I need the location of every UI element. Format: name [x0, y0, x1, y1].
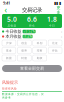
staticText: 沪深	[6, 41, 12, 45]
staticText: 科创	[37, 41, 43, 45]
staticText: 5.0	[7, 15, 17, 24]
button[interactable]: 更多	[55, 6, 62, 13]
staticText: -1.2%	[24, 35, 32, 38]
staticText: 本月收益	[5, 34, 21, 39]
staticText: 转债	[21, 56, 27, 60]
button[interactable]: 期权	[33, 55, 47, 61]
staticText: 1.8	[47, 15, 57, 24]
staticText: 持仓	[29, 24, 35, 27]
staticText: 存款	[52, 49, 58, 52]
staticText: +0.52%	[24, 30, 35, 33]
button[interactable]: 沪深	[2, 40, 16, 46]
staticText: ‹	[4, 5, 6, 15]
staticText: 基金	[6, 49, 12, 52]
staticText: ▮▮ ▮	[54, 1, 61, 5]
staticText: 更多	[56, 5, 60, 15]
staticText: 6.6	[27, 15, 37, 24]
staticText: ›	[61, 34, 62, 39]
button[interactable]: 北证	[48, 40, 62, 46]
staticText: 数据来源：交易所公开信息，仅供参考	[2, 93, 44, 99]
button[interactable]: 本月收益	[0, 34, 64, 39]
staticText: 查看全部交易	[20, 66, 44, 71]
button[interactable]: 查看全部交易	[2, 65, 62, 72]
button[interactable]: 科创	[33, 40, 47, 46]
staticText: 今日收益	[5, 29, 21, 34]
staticText: 理财	[37, 49, 43, 52]
staticText: 交易记录	[22, 7, 42, 13]
button[interactable]: 债券	[17, 47, 31, 53]
staticText: 9:41	[3, 0, 10, 6]
staticText: 风险提示	[2, 80, 18, 85]
button[interactable]: 存款	[48, 47, 62, 53]
staticText: 投资有风险	[2, 87, 17, 90]
staticText: 期权	[37, 56, 43, 60]
button[interactable]: 基金	[2, 47, 16, 53]
staticText: 债券	[21, 49, 27, 52]
staticText: ›	[61, 29, 62, 34]
staticText: 今日	[49, 24, 55, 27]
staticText: 创业	[21, 41, 27, 45]
button[interactable]: 理财	[33, 47, 47, 53]
button[interactable]: 新股	[2, 55, 16, 61]
staticText: 总收益	[7, 24, 16, 27]
button[interactable]: 转债	[17, 55, 31, 61]
button[interactable]: Back	[2, 6, 9, 13]
staticText: 新股	[6, 56, 12, 60]
button[interactable]: 创业	[17, 40, 31, 46]
staticText: 北证	[52, 41, 58, 45]
button[interactable]: 今日收益	[0, 29, 64, 34]
